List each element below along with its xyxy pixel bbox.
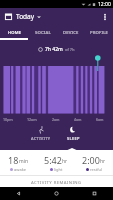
staticText: hr xyxy=(100,158,106,165)
staticText: 12am xyxy=(27,117,37,122)
button[interactable]: Recents xyxy=(75,187,113,200)
staticText: hr xyxy=(62,158,68,165)
staticText: ACTIVITY REMAINING xyxy=(31,180,82,186)
button[interactable]: More options xyxy=(99,11,111,23)
staticText: 2:00 xyxy=(82,154,100,166)
staticText: 2am xyxy=(52,117,60,122)
button[interactable]: PROFILE xyxy=(85,25,113,40)
button[interactable]: Home xyxy=(37,187,75,200)
staticText: PROFILE xyxy=(90,30,109,36)
staticText: SOCIAL xyxy=(35,30,51,36)
staticText: 12:00 xyxy=(98,1,111,8)
button[interactable]: SLEEP xyxy=(57,123,89,148)
button[interactable]: SOCIAL xyxy=(29,25,57,40)
staticText: min xyxy=(19,158,29,165)
button[interactable]: 18 xyxy=(0,151,37,175)
button[interactable]: DEVICE xyxy=(57,25,85,40)
staticText: DEVICE xyxy=(63,30,79,36)
staticText: awake xyxy=(14,167,27,172)
button[interactable]: 5:42 xyxy=(37,151,75,175)
staticText: 7h 42m xyxy=(45,46,63,53)
staticText: SLEEP xyxy=(67,136,80,141)
button[interactable]: 2:00 xyxy=(75,151,113,175)
staticText: restful xyxy=(90,167,103,172)
staticText: HOME xyxy=(8,30,22,36)
button[interactable]: ACTIVITY xyxy=(25,123,57,148)
staticText: of 7h xyxy=(65,47,75,52)
button[interactable]: HOME xyxy=(0,25,29,40)
staticText: 5:42 xyxy=(44,154,62,166)
staticText: light xyxy=(54,167,63,172)
staticText: 6am xyxy=(96,117,104,122)
staticText: ACTIVITY xyxy=(31,136,51,141)
staticText: 18 xyxy=(8,154,19,166)
staticText: 10pm xyxy=(3,117,13,122)
staticText: 4am xyxy=(74,117,82,122)
button[interactable]: Back xyxy=(0,187,37,200)
button[interactable]: Calendar xyxy=(4,12,13,21)
staticText: Today xyxy=(16,12,35,21)
